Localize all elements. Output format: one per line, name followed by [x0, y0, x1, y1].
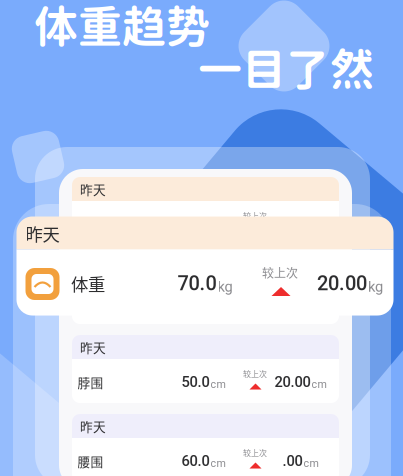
staticText: 昨天 — [80, 417, 106, 435]
button[interactable]: 昨天 — [72, 256, 339, 324]
staticText: cm — [303, 457, 318, 470]
staticText: 体重 — [71, 271, 105, 296]
staticText: cm — [311, 378, 326, 391]
button[interactable]: 昨天 — [72, 335, 339, 403]
staticText: .00 — [282, 452, 302, 470]
staticText: kg — [368, 278, 383, 295]
staticText: 一目了然 — [198, 43, 374, 95]
staticText: 脖围 — [77, 373, 103, 391]
staticText: 昨天 — [25, 221, 59, 246]
staticText: cm — [210, 457, 225, 470]
staticText: 较上次 — [243, 368, 267, 379]
staticText: 较上次 — [243, 447, 267, 458]
staticText: 昨天 — [80, 259, 106, 277]
button[interactable]: 昨天 — [16, 216, 393, 315]
staticText: 70.0 — [183, 215, 211, 233]
staticText: cm — [210, 378, 225, 391]
button[interactable]: 昨天 — [72, 414, 339, 476]
staticText: 50.0 — [181, 373, 209, 391]
staticText: 昨天 — [80, 180, 106, 198]
staticText: 较上次 — [243, 210, 267, 221]
button[interactable]: 昨天 — [72, 177, 339, 245]
staticText: 70.0 — [177, 272, 216, 295]
staticText: 60.0 — [181, 452, 209, 470]
staticText: 20.00 — [276, 215, 312, 233]
staticText: kg — [217, 278, 232, 295]
staticText: 体重 — [77, 215, 103, 233]
staticText: 腰围 — [77, 452, 103, 470]
staticText: 20.00 — [276, 294, 312, 312]
staticText: 体重趋势 — [34, 0, 210, 52]
staticText: 昨天 — [80, 338, 106, 356]
staticText: 较上次 — [262, 264, 298, 281]
staticText: 20.00 — [274, 373, 310, 391]
staticText: 20.00 — [317, 272, 367, 295]
